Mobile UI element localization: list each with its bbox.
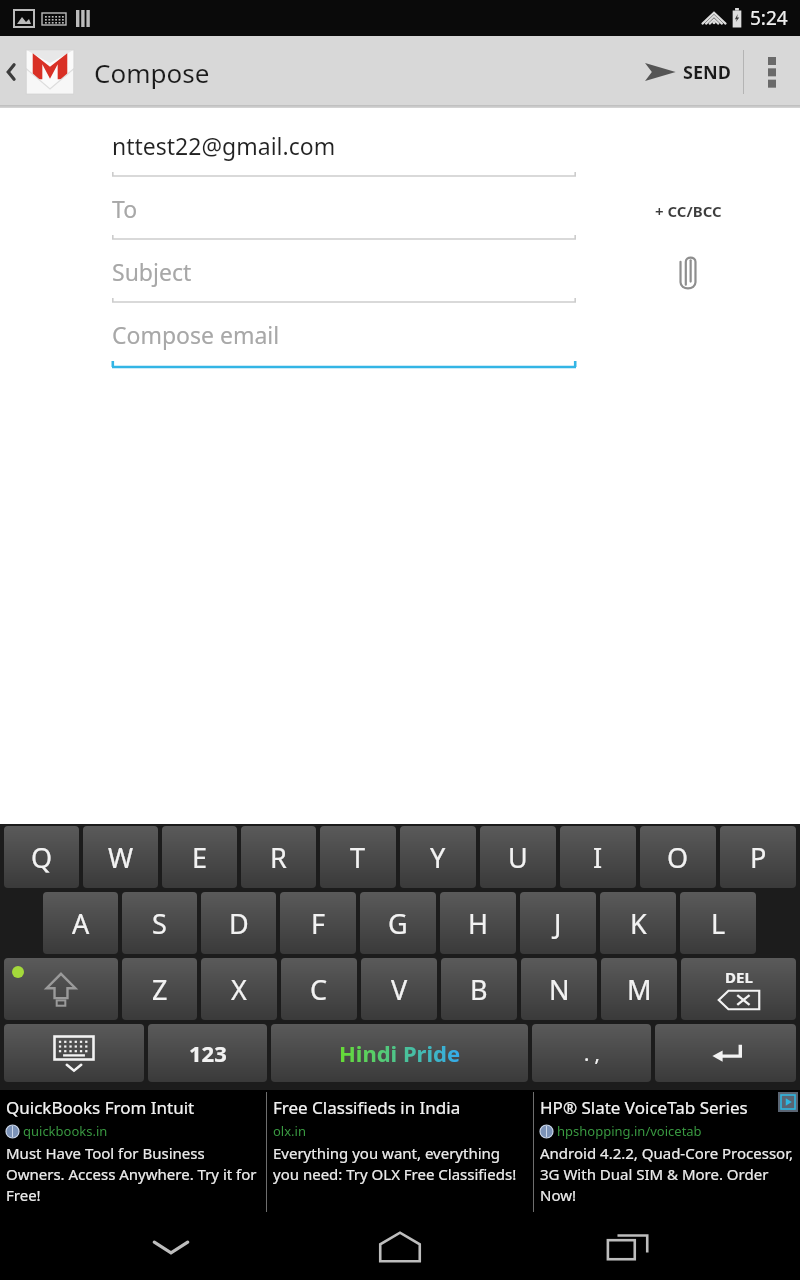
button[interactable]: A — [43, 892, 118, 954]
staticText: QuickBooks From Intuit — [6, 1096, 195, 1119]
button[interactable]: Shift — [4, 958, 118, 1020]
button[interactable]: N — [521, 958, 597, 1020]
button[interactable]: Attach file — [663, 249, 713, 299]
staticText: E — [192, 839, 208, 876]
staticText: W — [108, 839, 134, 876]
staticText: olx.in — [273, 1122, 306, 1140]
button[interactable]: + CC/BCC — [647, 193, 730, 229]
staticText: quickbooks.in — [23, 1122, 108, 1140]
button[interactable]: W — [83, 826, 158, 888]
staticText: 5:24 — [750, 5, 788, 31]
staticText: T — [350, 839, 366, 876]
staticText: Must Have Tool for Business Owners. Acce… — [6, 1143, 260, 1206]
staticText: nttest22@gmail.com — [112, 130, 336, 161]
staticText: A — [72, 905, 90, 942]
button[interactable]: Z — [122, 958, 197, 1020]
button[interactable]: Hide keyboard — [126, 1214, 216, 1280]
staticText: Subject — [112, 256, 192, 287]
button[interactable]: P — [720, 826, 796, 888]
staticText: M — [627, 971, 652, 1008]
button[interactable]: AdChoices — [778, 1090, 800, 1112]
staticText: . , — [584, 1040, 600, 1067]
button[interactable]: Compose email — [112, 305, 576, 370]
staticText: Free Classifieds in India — [273, 1096, 461, 1119]
staticText: hpshopping.in/voicetab — [557, 1122, 702, 1140]
staticText: K — [630, 905, 647, 942]
staticText: C — [310, 971, 328, 1008]
button[interactable]: Navigate up — [0, 36, 86, 108]
staticText: F — [311, 905, 326, 942]
staticText: J — [554, 905, 562, 942]
staticText: N — [549, 971, 570, 1008]
staticText: Hindi Pride — [339, 1038, 461, 1068]
button[interactable]: nttest22@gmail.com — [112, 108, 576, 179]
staticText: To — [112, 193, 138, 224]
button[interactable]: HP® Slate VoiceTab Series — [534, 1090, 800, 1214]
button[interactable]: K — [600, 892, 676, 954]
button[interactable]: E — [162, 826, 237, 888]
button[interactable]: J — [520, 892, 596, 954]
staticText: Y — [430, 839, 446, 876]
button[interactable]: More options — [744, 36, 800, 108]
button[interactable] — [655, 1024, 796, 1082]
staticText: Q — [31, 839, 53, 876]
staticText: I — [593, 839, 603, 876]
staticText: SEND — [683, 60, 731, 85]
button[interactable]: L — [680, 892, 756, 954]
staticText: HP® Slate VoiceTab Series — [540, 1096, 748, 1119]
button[interactable]: G — [360, 892, 436, 954]
button[interactable]: SEND — [631, 36, 743, 108]
staticText: V — [391, 971, 408, 1008]
staticText: G — [388, 905, 408, 942]
button[interactable]: F — [280, 892, 356, 954]
button[interactable]: D — [201, 892, 276, 954]
button[interactable]: V — [361, 958, 437, 1020]
staticText: DEL — [725, 967, 753, 987]
staticText: S — [152, 905, 167, 942]
button[interactable]: Subject — [112, 242, 576, 305]
button[interactable]: Q — [4, 826, 79, 888]
staticText: + CC/BCC — [655, 201, 722, 221]
staticText: Z — [152, 971, 168, 1008]
button[interactable]: Hindi Pride — [271, 1024, 528, 1082]
staticText: Compose email — [112, 319, 280, 350]
button[interactable]: To — [112, 179, 576, 242]
staticText: P — [750, 839, 767, 876]
button[interactable]: X — [201, 958, 277, 1020]
button[interactable]: S — [122, 892, 197, 954]
staticText: O — [667, 839, 689, 876]
button[interactable]: C — [281, 958, 357, 1020]
button[interactable]: I — [560, 826, 636, 888]
button[interactable]: Delete — [681, 958, 796, 1020]
button[interactable]: 123 — [148, 1024, 267, 1082]
staticText: 123 — [189, 1038, 227, 1068]
button[interactable]: T — [320, 826, 396, 888]
button[interactable]: Free Classifieds in India — [267, 1090, 533, 1214]
button[interactable]: U — [480, 826, 556, 888]
staticText: Compose — [94, 55, 210, 90]
staticText: R — [270, 839, 287, 876]
staticText: L — [711, 905, 726, 942]
button[interactable]: B — [441, 958, 517, 1020]
staticText: Everything you want, everything you need… — [273, 1143, 527, 1185]
button[interactable]: Home — [355, 1214, 445, 1280]
button[interactable]: M — [601, 958, 677, 1020]
button[interactable]: Switch keyboard — [4, 1024, 144, 1082]
staticText: H — [468, 905, 489, 942]
button[interactable]: R — [241, 826, 316, 888]
button[interactable]: . , — [532, 1024, 651, 1082]
staticText: U — [508, 839, 528, 876]
button[interactable]: H — [440, 892, 516, 954]
button[interactable]: Y — [400, 826, 476, 888]
staticText: Android 4.2.2, Quad-Core Processor, 3G W… — [540, 1143, 794, 1206]
button[interactable]: QuickBooks From Intuit — [0, 1090, 266, 1214]
button[interactable]: O — [640, 826, 716, 888]
staticText: X — [231, 971, 247, 1008]
staticText: B — [470, 971, 488, 1008]
staticText: D — [229, 905, 249, 942]
button[interactable]: Recent apps — [584, 1214, 674, 1280]
